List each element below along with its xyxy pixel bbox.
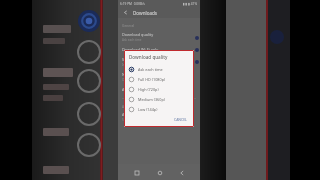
staticText: Ask each time: [122, 38, 142, 42]
staticText: ▮ ▮ ▮ 41%: [183, 2, 198, 6]
staticText: Download quality: [122, 32, 154, 37]
staticText: Internal: [122, 63, 134, 67]
staticText: Download quality: [129, 54, 168, 60]
staticText: CANCEL: [174, 117, 187, 122]
button[interactable]: High (720p): [129, 84, 189, 94]
staticText: Low (144p): [138, 107, 158, 112]
button[interactable]: Toggle: [195, 48, 199, 52]
staticText: Ask each time: [138, 67, 163, 72]
staticText: 5.1.2: [122, 118, 129, 122]
staticText: About: [122, 104, 132, 108]
button[interactable]: Medium (360p): [129, 94, 189, 104]
button[interactable]: Back: [121, 8, 130, 17]
staticText: General: [122, 23, 135, 27]
button[interactable]: Download Wi-Fi only: [122, 47, 196, 52]
staticText: High (720p): [138, 87, 159, 92]
button[interactable]: Notifications: [122, 72, 196, 82]
button[interactable]: Home: [155, 168, 164, 177]
button[interactable]: Recents: [132, 168, 141, 177]
button[interactable]: Download quality: [122, 32, 196, 42]
button[interactable]: Toggle: [195, 36, 199, 40]
button[interactable]: Full HD (1080p): [129, 74, 189, 84]
staticText: Storage: [122, 57, 136, 62]
button[interactable]: Low (144p): [129, 104, 189, 114]
staticText: Notifications: [122, 72, 145, 77]
button[interactable]: Ask each time: [129, 64, 189, 74]
button[interactable]: Back: [177, 168, 186, 177]
staticText: Downloads: [133, 10, 158, 16]
button[interactable]: Storage: [122, 57, 196, 67]
button[interactable]: Toggle: [195, 60, 199, 64]
staticText: Full HD (1080p): [138, 77, 166, 82]
staticText: Auto resume: [122, 87, 145, 92]
staticText: Medium (360p): [138, 97, 165, 102]
staticText: App version: [122, 112, 144, 117]
staticText: Download Wi-Fi only: [122, 47, 159, 52]
staticText: On: [122, 78, 127, 82]
button[interactable]: App version: [122, 112, 196, 122]
button[interactable]: CANCEL: [172, 116, 189, 123]
button[interactable]: Auto resume: [122, 87, 196, 92]
staticText: 6:19 PM 0.0KB/s: [120, 2, 145, 6]
